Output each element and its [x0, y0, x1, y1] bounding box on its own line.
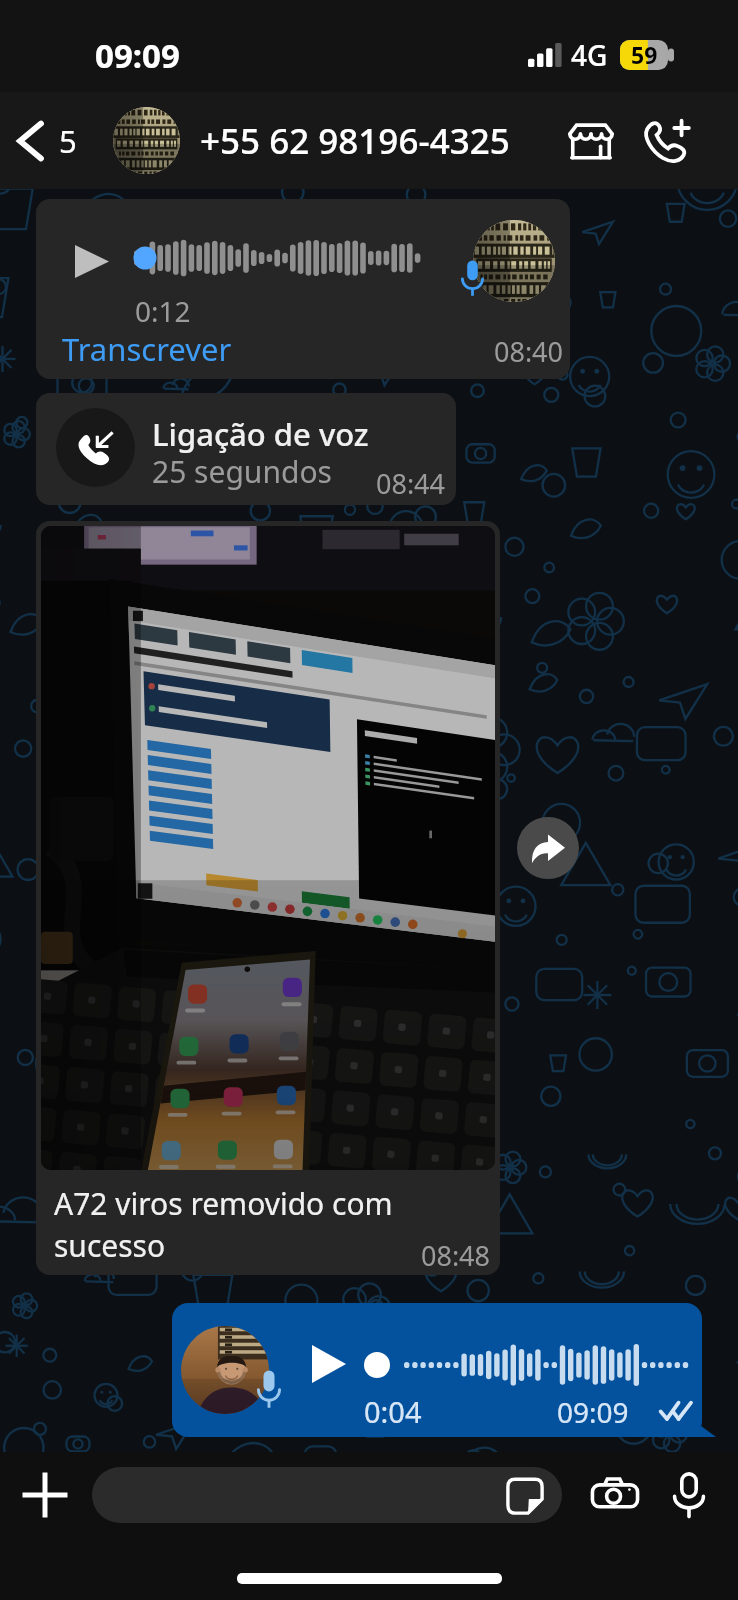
- staticText: A72 viros removido com sucesso: [54, 1183, 393, 1266]
- staticText: Ligação de voz: [152, 413, 369, 455]
- staticText: 59: [631, 39, 658, 69]
- button[interactable]: Voice message: [656, 1462, 722, 1528]
- button[interactable]: Play voice message: [172, 1303, 702, 1437]
- staticText: 08:40: [494, 333, 564, 370]
- staticText: 09:09: [95, 33, 180, 78]
- button[interactable]: Play voice message: [59, 230, 121, 292]
- staticText: 0:04: [364, 1392, 422, 1431]
- button[interactable]: Add call: [620, 92, 714, 189]
- button[interactable]: Attach: [12, 1462, 78, 1528]
- button[interactable]: Back: [6, 92, 89, 189]
- staticText: 09:09: [557, 1393, 629, 1431]
- staticText: 5: [59, 120, 77, 162]
- button[interactable]: Forward: [517, 817, 579, 879]
- button[interactable]: Ligação de voz: [36, 393, 456, 505]
- staticText: 08:48: [421, 1237, 491, 1274]
- staticText: +55 62 98196-4325: [200, 117, 510, 165]
- button[interactable]: Play voice message: [298, 1331, 360, 1397]
- button[interactable]: [92, 1467, 562, 1523]
- button[interactable]: Profile photo: [113, 107, 180, 174]
- staticText: 08:44: [376, 465, 446, 502]
- button[interactable]: Camera: [582, 1462, 648, 1528]
- staticText: 4G: [571, 36, 608, 74]
- button[interactable]: Play voice message: [36, 199, 570, 379]
- staticText: 0:12: [135, 292, 191, 330]
- button[interactable]: Transcrever: [50, 319, 244, 379]
- button[interactable]: Business catalog: [544, 92, 638, 189]
- staticText: Transcrever: [62, 328, 232, 370]
- staticText: 25 segundos: [152, 451, 332, 492]
- button[interactable]: A72 viros removido com sucesso: [36, 521, 500, 1275]
